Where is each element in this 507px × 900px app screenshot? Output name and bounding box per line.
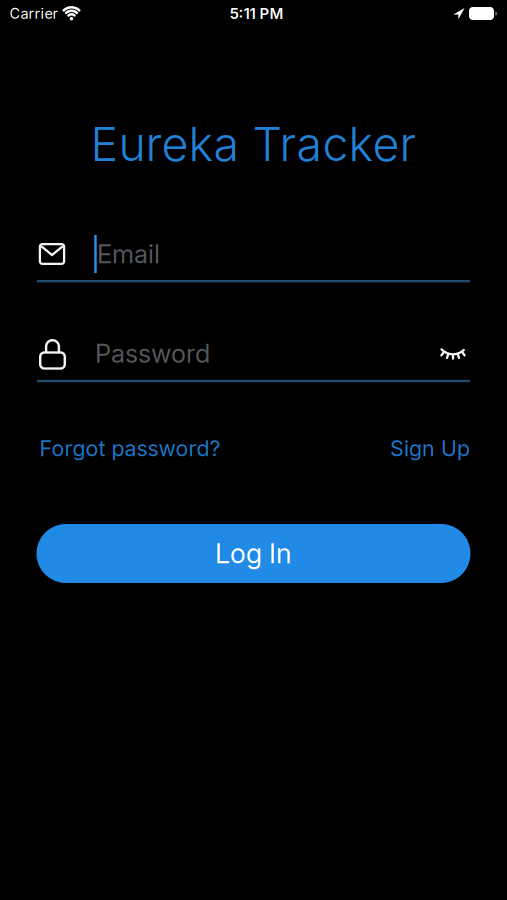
- button[interactable]: Log In: [36, 524, 470, 583]
- staticText: Password: [95, 338, 210, 369]
- staticText: 5:11 PM: [229, 4, 283, 22]
- staticText: Log In: [215, 537, 292, 570]
- staticText: Forgot password?: [39, 435, 220, 461]
- staticText: Carrier: [9, 5, 57, 22]
- button[interactable]: Sign Up: [390, 435, 470, 461]
- staticText: Sign Up: [390, 435, 470, 461]
- button[interactable]: Show password: [434, 339, 471, 369]
- button[interactable]: Forgot password?: [39, 435, 220, 461]
- staticText: Email: [97, 239, 160, 269]
- staticText: Eureka Tracker: [90, 116, 416, 172]
